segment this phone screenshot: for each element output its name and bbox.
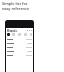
button[interactable]: Recent bbox=[12, 33, 15, 36]
button[interactable] bbox=[7, 49, 32, 53]
staticText: easy reference bbox=[2, 6, 30, 11]
button[interactable] bbox=[7, 53, 32, 57]
staticText: Basic bbox=[7, 28, 18, 32]
button[interactable] bbox=[7, 37, 32, 41]
button[interactable]: All bbox=[7, 33, 10, 36]
button[interactable]: Shared bbox=[30, 33, 32, 36]
button[interactable]: Starred bbox=[18, 33, 21, 36]
button[interactable] bbox=[7, 45, 32, 49]
button[interactable]: Archived bbox=[24, 33, 27, 36]
button[interactable] bbox=[7, 41, 32, 45]
button[interactable]: More options bbox=[27, 30, 32, 31]
staticText: Simple list for bbox=[2, 1, 28, 6]
